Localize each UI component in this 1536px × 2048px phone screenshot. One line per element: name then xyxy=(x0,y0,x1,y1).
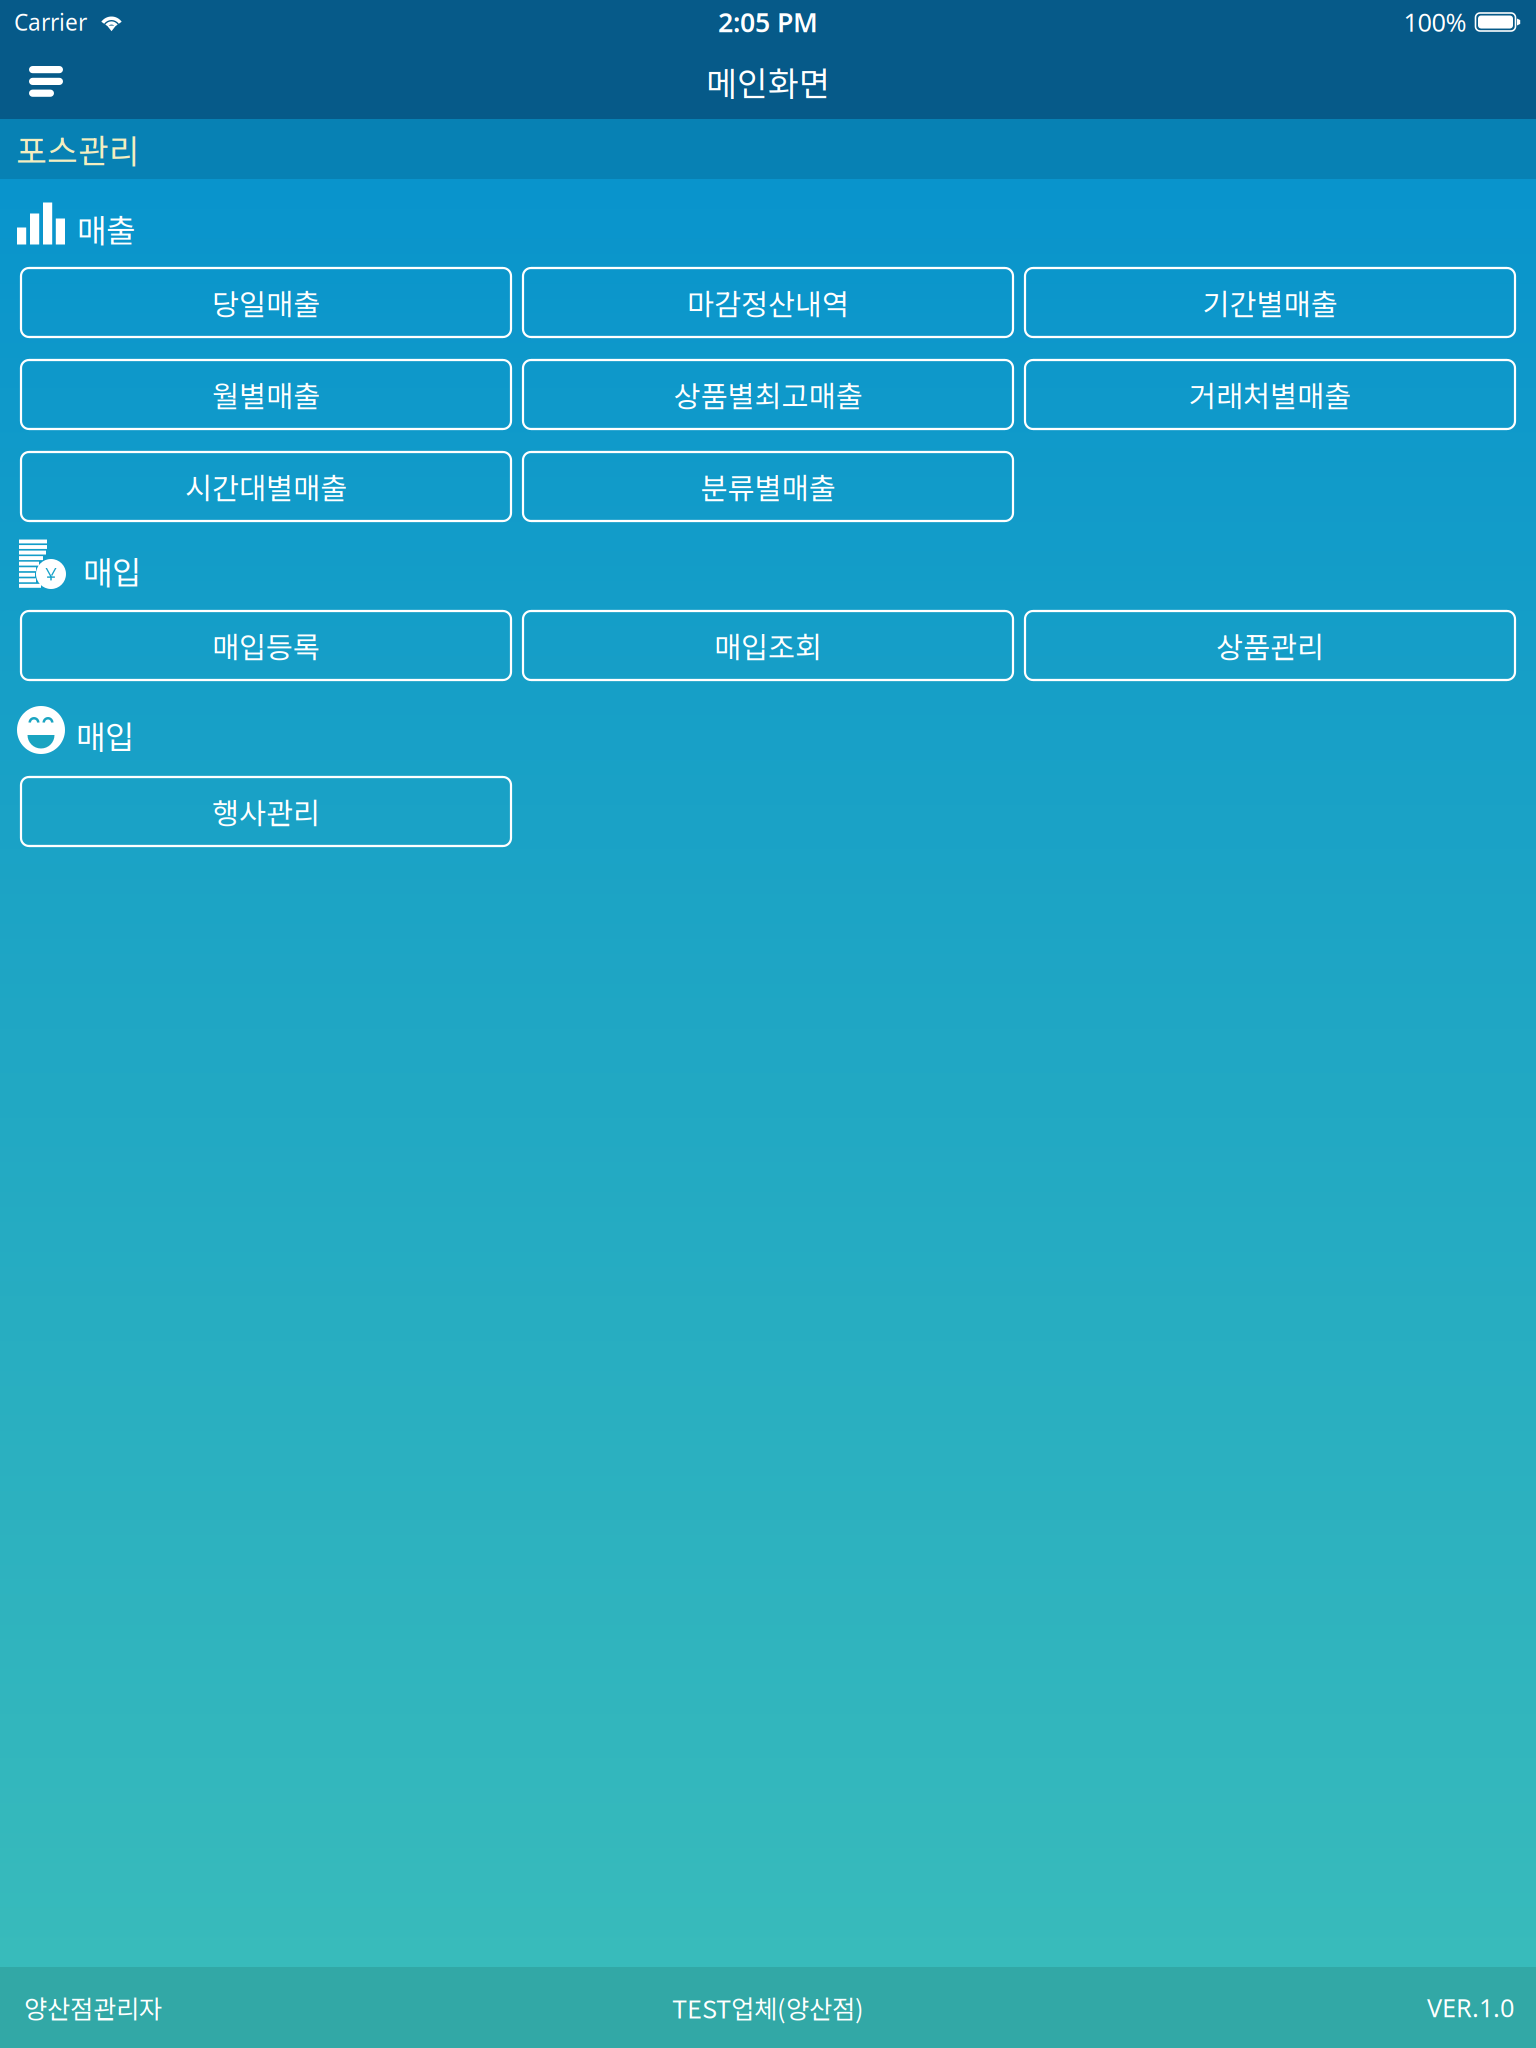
staticText: 매입 xyxy=(83,547,141,594)
staticText: 매입조회 xyxy=(714,624,822,667)
button[interactable]: 거래처별매출 xyxy=(1025,360,1515,429)
staticText: TEST업체(양산점) xyxy=(672,1989,864,2026)
staticText: 월별매출 xyxy=(212,373,320,416)
staticText: 매입등록 xyxy=(212,624,320,667)
button[interactable]: 매입등록 xyxy=(21,611,511,680)
button[interactable]: 상품관리 xyxy=(1025,611,1515,680)
button[interactable]: 행사관리 xyxy=(21,777,511,846)
staticText: 상품관리 xyxy=(1216,624,1324,667)
button[interactable]: 시간대별매출 xyxy=(21,452,511,521)
staticText: 매입 xyxy=(76,712,134,758)
button[interactable]: 기간별매출 xyxy=(1025,268,1515,337)
button[interactable]: 매입조회 xyxy=(523,611,1013,680)
button[interactable]: 당일매출 xyxy=(21,268,511,337)
staticText: 2:05 PM xyxy=(718,4,818,40)
staticText: 100% xyxy=(1403,5,1466,39)
staticText: 시간대별매출 xyxy=(185,465,347,508)
staticText: 기간별매출 xyxy=(1202,281,1337,324)
staticText: 매출 xyxy=(77,205,135,252)
button[interactable]: 마감정산내역 xyxy=(523,268,1013,337)
staticText: 행사관리 xyxy=(212,790,320,833)
staticText: 당일매출 xyxy=(212,281,320,324)
staticText: 상품별최고매출 xyxy=(673,373,862,416)
staticText: VER.1.0 xyxy=(1427,1991,1514,2024)
staticText: 거래처별매출 xyxy=(1189,373,1351,416)
staticText: 양산점관리자 xyxy=(24,1989,162,2026)
staticText: 분류별매출 xyxy=(700,465,835,508)
button[interactable]: 상품별최고매출 xyxy=(523,360,1013,429)
staticText: 포스관리 xyxy=(16,125,140,173)
staticText: 마감정산내역 xyxy=(687,281,849,324)
staticText: Carrier xyxy=(14,7,87,37)
button[interactable]: 월별매출 xyxy=(21,360,511,429)
button[interactable]: Menu xyxy=(0,44,83,119)
staticText: 메인화면 xyxy=(706,57,830,106)
button[interactable]: 분류별매출 xyxy=(523,452,1013,521)
